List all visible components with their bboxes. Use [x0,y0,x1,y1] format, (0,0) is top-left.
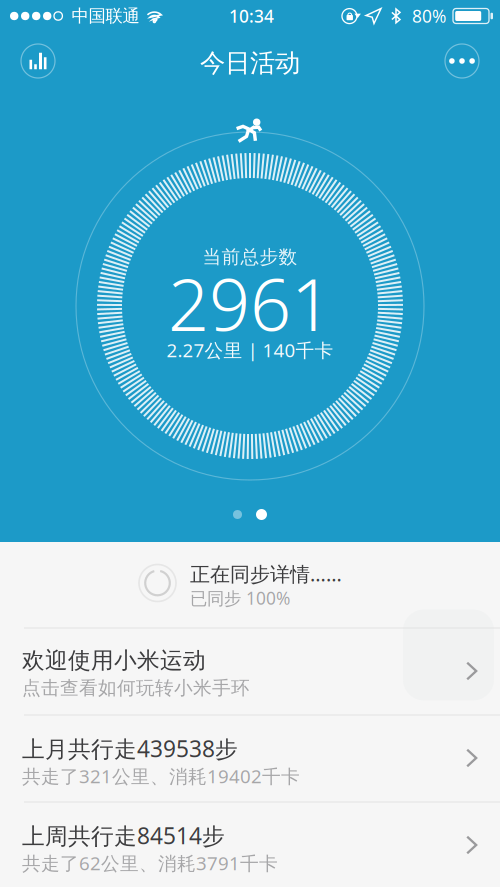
staticText: 共走了321公里、消耗19402千卡 [22,763,300,788]
staticText: 10:34 [229,4,274,27]
staticText: 共走了62公里、消耗3791千卡 [22,850,278,875]
button[interactable]: More options [438,37,486,85]
staticText: 点击查看如何玩转小米手环 [22,676,250,699]
staticText: 已同步 100% [190,586,290,609]
staticText: 当前总步数 [202,245,297,268]
staticText: 80% [412,4,446,27]
staticText: 上周共行走84514步 [22,820,225,851]
staticText: 今日活动 [200,47,300,78]
staticText: 2961 [168,255,332,351]
staticText: 欢迎使用小米运动 [22,646,206,674]
staticText: 中国联通 [71,5,139,27]
staticText: 上月共行走439538步 [22,733,238,764]
button[interactable]: Statistics [14,37,62,85]
button[interactable]: 上周共行走84514步 [0,802,500,887]
staticText: 2.27公里 | 140千卡 [166,338,333,362]
button[interactable]: 欢迎使用小米运动 [0,628,500,714]
button[interactable]: 上月共行走439538步 [0,715,500,801]
staticText: 正在同步详情…… [190,560,342,587]
